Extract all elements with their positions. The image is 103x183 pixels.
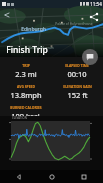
staticText: Finish Trip: [6, 44, 48, 56]
button[interactable]: Add note: [82, 49, 98, 65]
button[interactable]: Back: [6, 170, 32, 183]
staticText: TRIP: [22, 63, 30, 68]
staticText: 109 kcal: [11, 111, 40, 116]
button[interactable]: Recents: [71, 170, 97, 183]
staticText: Palace of Holyroodhouse: [55, 22, 93, 26]
button[interactable]: Map layers: [2, 10, 12, 20]
staticText: Edinburgh: [21, 26, 46, 33]
button[interactable]: ELEVATION GAIN: [51, 84, 103, 100]
button[interactable]: Home: [39, 170, 65, 183]
staticText: AVG SPEED: [17, 84, 35, 89]
staticText: National Museum: [28, 46, 54, 50]
staticText: ELEVATION: [12, 116, 27, 120]
button[interactable]: [11, 121, 90, 161]
staticText: 13.8mph: [10, 90, 42, 100]
button[interactable]: TRIP: [0, 63, 51, 79]
staticText: 2.3 mi: [15, 69, 37, 79]
staticText: ELEVATION GAIN: [63, 84, 92, 89]
button[interactable]: BURNED CALORIES: [0, 105, 51, 116]
staticText: ELAPSED TIME: [65, 63, 89, 68]
button[interactable]: AVG SPEED: [0, 84, 51, 100]
staticText: 11:54: [90, 1, 102, 7]
staticText: 152 ft: [67, 90, 88, 100]
staticText: BURNED CALORIES: [10, 105, 42, 110]
staticText: 00:10: [67, 69, 87, 79]
button[interactable]: ELAPSED TIME: [51, 63, 103, 79]
button[interactable]: Share: [87, 10, 100, 23]
